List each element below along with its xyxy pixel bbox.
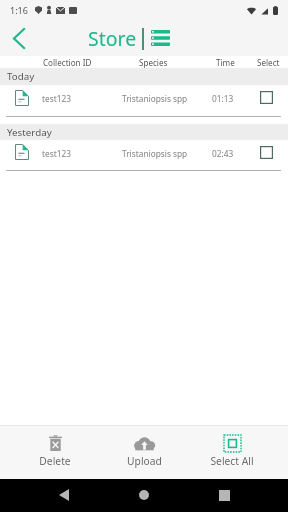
button[interactable]: Upload [108,426,180,479]
staticText: test123 [42,148,71,159]
button[interactable]: Back [52,483,76,507]
button[interactable]: test123 [0,140,288,171]
staticText: Delete [39,454,71,468]
staticText: Select All [210,454,254,468]
staticText: 1:16 [10,4,28,16]
staticText: Species [139,57,168,68]
button[interactable]: test123 [0,85,288,117]
staticText: Yesterday [7,126,52,139]
staticText: Store [88,25,137,52]
staticText: Upload [127,454,162,468]
staticText: 02:43 [212,148,234,159]
staticText: Tristaniopsis spp [122,93,188,104]
staticText: 01:13 [212,93,234,104]
button[interactable]: Recents [212,483,236,507]
button[interactable]: Select item [260,91,273,104]
button[interactable]: List options [151,30,170,46]
button[interactable]: Back [6,25,32,51]
staticText: Today [7,70,35,83]
button[interactable]: Home [132,483,156,507]
button[interactable]: Delete [19,426,91,479]
staticText: Time [216,57,235,68]
button[interactable]: Select item [260,146,273,159]
staticText: test123 [42,93,71,104]
staticText: Select [257,57,280,68]
button[interactable]: Select All [196,426,268,479]
staticText: Collection ID [43,57,92,68]
staticText: Tristaniopsis spp [122,148,188,159]
